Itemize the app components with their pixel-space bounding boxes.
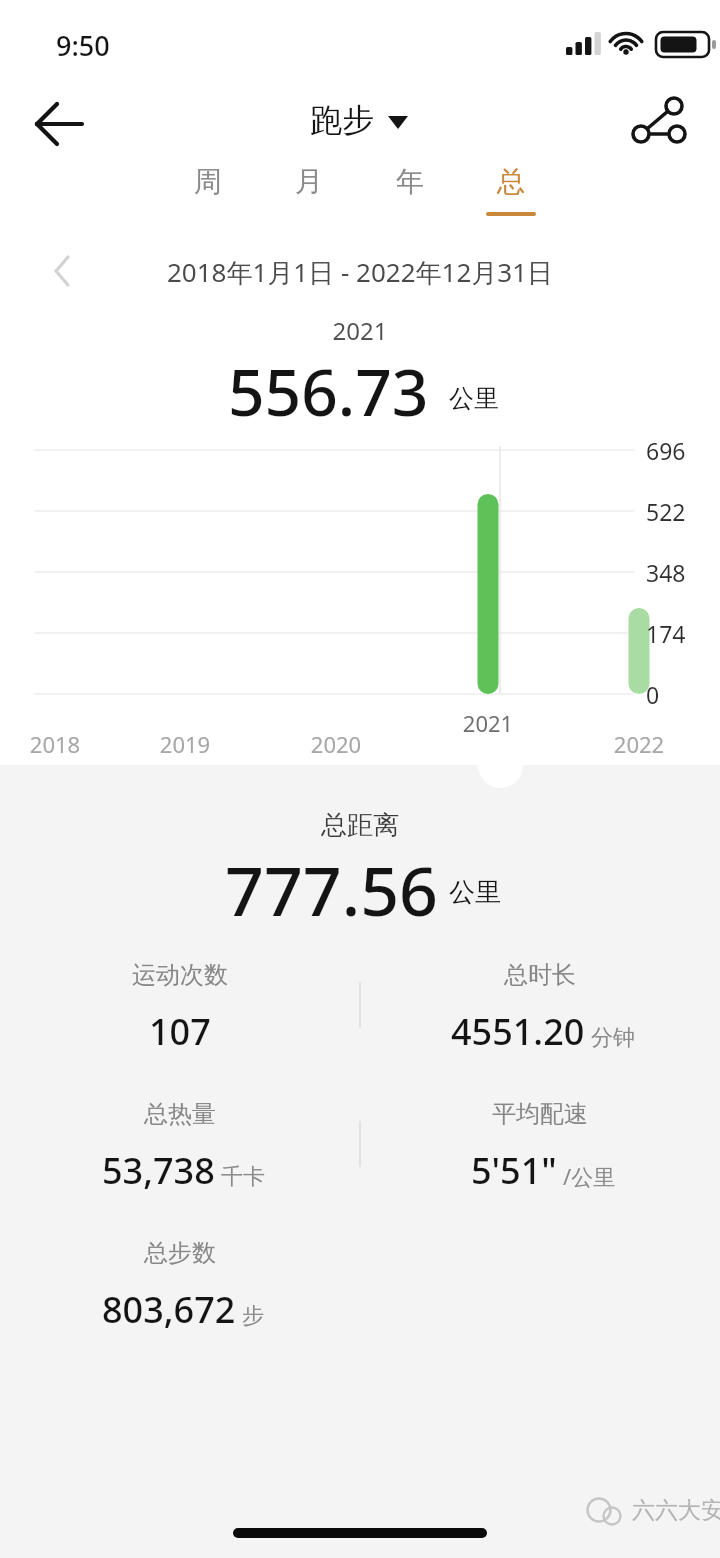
button[interactable]: 周 (162, 160, 254, 220)
staticText: 2020 (251, 729, 421, 759)
staticText: 2021 (160, 314, 560, 347)
button[interactable]: 平均配速 (365, 1099, 715, 1209)
staticText: 公里 (449, 383, 499, 414)
staticText: 月 (263, 164, 355, 199)
staticText: 千卡 (221, 1163, 265, 1191)
staticText: 公里 (449, 876, 501, 909)
staticText: 周 (162, 164, 254, 199)
button[interactable]: 总步数 (5, 1238, 355, 1348)
staticText: 年 (364, 164, 456, 199)
staticText: 348 (646, 557, 686, 588)
staticText: 跑步 (310, 100, 374, 140)
button[interactable]: 运动次数 (5, 960, 355, 1070)
staticText: 平均配速 (365, 1099, 715, 1129)
button[interactable]: 年 (364, 160, 456, 220)
button[interactable]: Back (24, 88, 96, 160)
staticText: 9:50 (56, 27, 110, 64)
staticText: 总步数 (5, 1238, 355, 1268)
staticText: 107 (149, 1007, 211, 1056)
button[interactable]: 跑步 (296, 94, 426, 148)
staticText: 步 (242, 1302, 264, 1330)
staticText: 2019 (100, 729, 270, 759)
staticText: 分钟 (591, 1024, 635, 1052)
staticText: 53,738 (102, 1146, 215, 1195)
button[interactable]: 总时长 (365, 960, 715, 1070)
staticText: 5'51" (471, 1146, 557, 1195)
staticText: 0 (646, 679, 660, 710)
staticText: 777.56 (225, 843, 438, 936)
staticText: 2018年1月1日 - 2022年12月31日 (50, 254, 670, 290)
staticText: 2021 (403, 708, 573, 738)
button[interactable]: 月 (263, 160, 355, 220)
staticText: 六六大安 (632, 1496, 720, 1525)
staticText: 总距离 (160, 809, 560, 842)
staticText: 运动次数 (5, 960, 355, 990)
staticText: 556.73 (228, 348, 429, 435)
staticText: 4551.20 (451, 1007, 585, 1056)
staticText: 696 (646, 435, 686, 466)
button[interactable]: 总热量 (5, 1099, 355, 1209)
staticText: 522 (646, 496, 686, 527)
staticText: 803,672 (102, 1285, 236, 1334)
staticText: /公里 (563, 1161, 616, 1191)
staticText: 2022 (554, 729, 720, 759)
staticText: 总热量 (5, 1099, 355, 1129)
button[interactable]: Previous period (34, 244, 92, 298)
staticText: 总时长 (365, 960, 715, 990)
staticText: 总 (465, 164, 557, 199)
button[interactable]: 总 (465, 160, 557, 220)
staticText: 174 (646, 618, 686, 649)
button[interactable]: Share (620, 84, 698, 162)
staticText: 2018 (0, 729, 140, 759)
